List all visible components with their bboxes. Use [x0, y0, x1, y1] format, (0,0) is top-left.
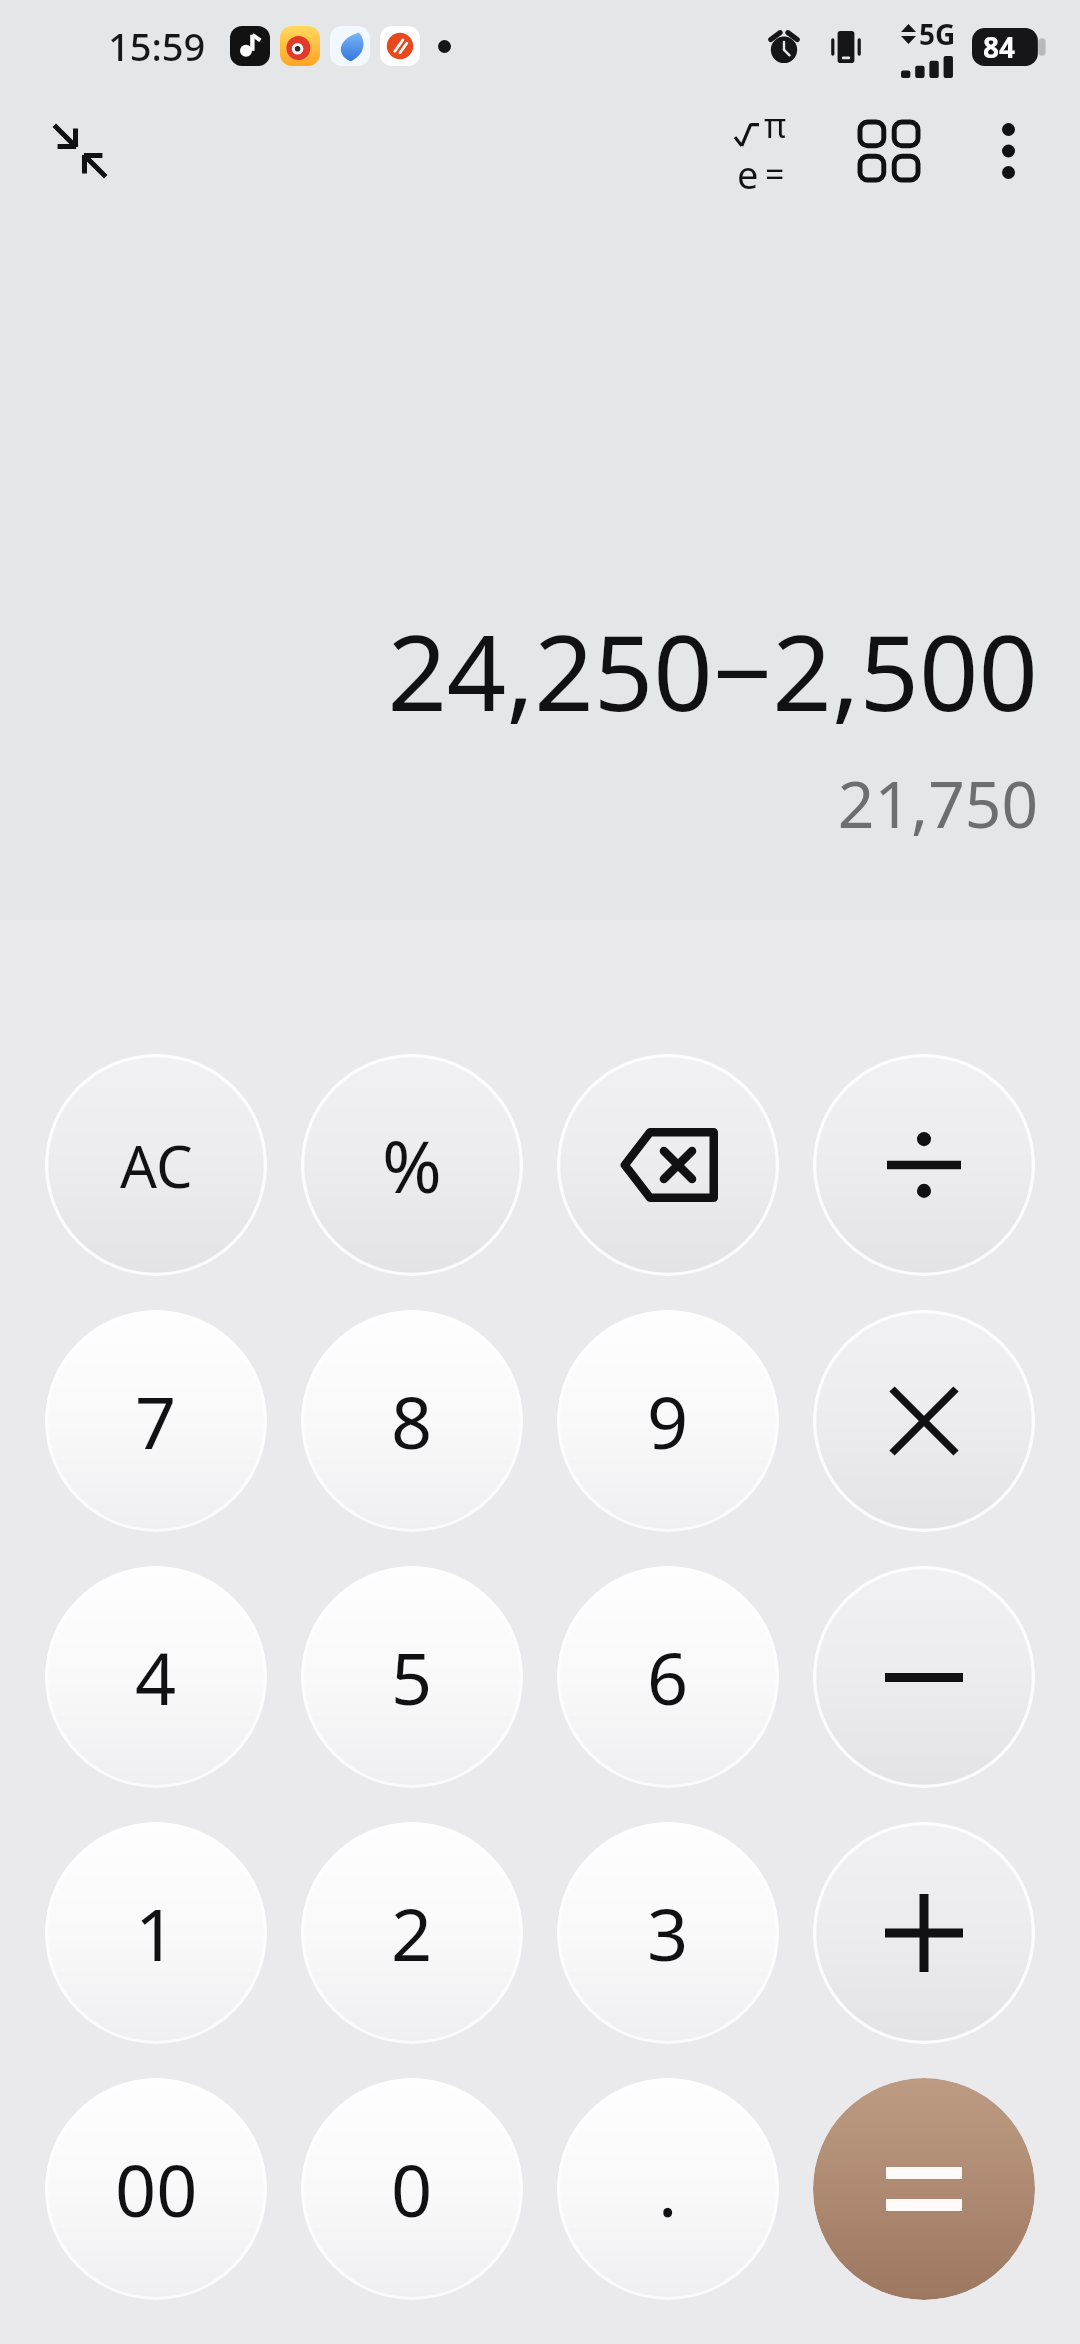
- button[interactable]: Minus: [813, 1566, 1035, 1788]
- other: Alarm: [764, 27, 804, 67]
- button[interactable]: Divide: [813, 1054, 1035, 1276]
- staticText: 2: [391, 1884, 433, 1982]
- staticText: %: [382, 1116, 442, 1214]
- staticText: 5G: [919, 15, 956, 53]
- button[interactable]: 4: [45, 1566, 267, 1788]
- staticText: 3: [647, 1884, 689, 1982]
- button[interactable]: Equals: [813, 2078, 1035, 2300]
- button[interactable]: Plus: [813, 1822, 1035, 2044]
- button[interactable]: Scientific mode: [706, 96, 816, 206]
- staticText: π: [764, 102, 787, 148]
- button[interactable]: Backspace: [557, 1054, 779, 1276]
- button[interactable]: 5: [301, 1566, 523, 1788]
- button[interactable]: Multiply: [813, 1310, 1035, 1532]
- staticText: 8: [391, 1372, 433, 1470]
- staticText: 1: [135, 1884, 177, 1982]
- button[interactable]: Collapse: [34, 105, 126, 197]
- button[interactable]: 2: [301, 1822, 523, 2044]
- staticText: 9: [647, 1372, 689, 1470]
- button[interactable]: 7: [45, 1310, 267, 1532]
- button[interactable]: Unit converter: [834, 96, 944, 206]
- button[interactable]: All clear: [45, 1054, 267, 1276]
- staticText: 00: [115, 2140, 198, 2238]
- staticText: 7: [135, 1372, 177, 1470]
- button[interactable]: 8: [301, 1310, 523, 1532]
- button[interactable]: 6: [557, 1566, 779, 1788]
- staticText: 24,250−2,500: [387, 600, 1038, 742]
- staticText: 84: [983, 28, 1016, 66]
- staticText: 4: [135, 1628, 177, 1726]
- button[interactable]: 9: [557, 1310, 779, 1532]
- button[interactable]: Decimal point: [557, 2078, 779, 2300]
- staticText: .: [658, 2140, 678, 2238]
- button[interactable]: 3: [557, 1822, 779, 2044]
- staticText: 0: [391, 2140, 433, 2238]
- staticText: =: [765, 151, 785, 197]
- other: Vibrate: [826, 27, 866, 67]
- button[interactable]: 0: [301, 2078, 523, 2300]
- staticText: AC: [120, 1126, 193, 1205]
- staticText: 5: [391, 1628, 433, 1726]
- button[interactable]: Double zero: [45, 2078, 267, 2300]
- staticText: e: [737, 148, 759, 200]
- other: Battery 84 percent: [972, 28, 1046, 66]
- button[interactable]: More options: [958, 101, 1058, 201]
- button[interactable]: 1: [45, 1822, 267, 2044]
- staticText: 21,750: [837, 760, 1038, 847]
- staticText: 15:59: [108, 20, 206, 72]
- staticText: 6: [647, 1628, 689, 1726]
- button[interactable]: Percent: [301, 1054, 523, 1276]
